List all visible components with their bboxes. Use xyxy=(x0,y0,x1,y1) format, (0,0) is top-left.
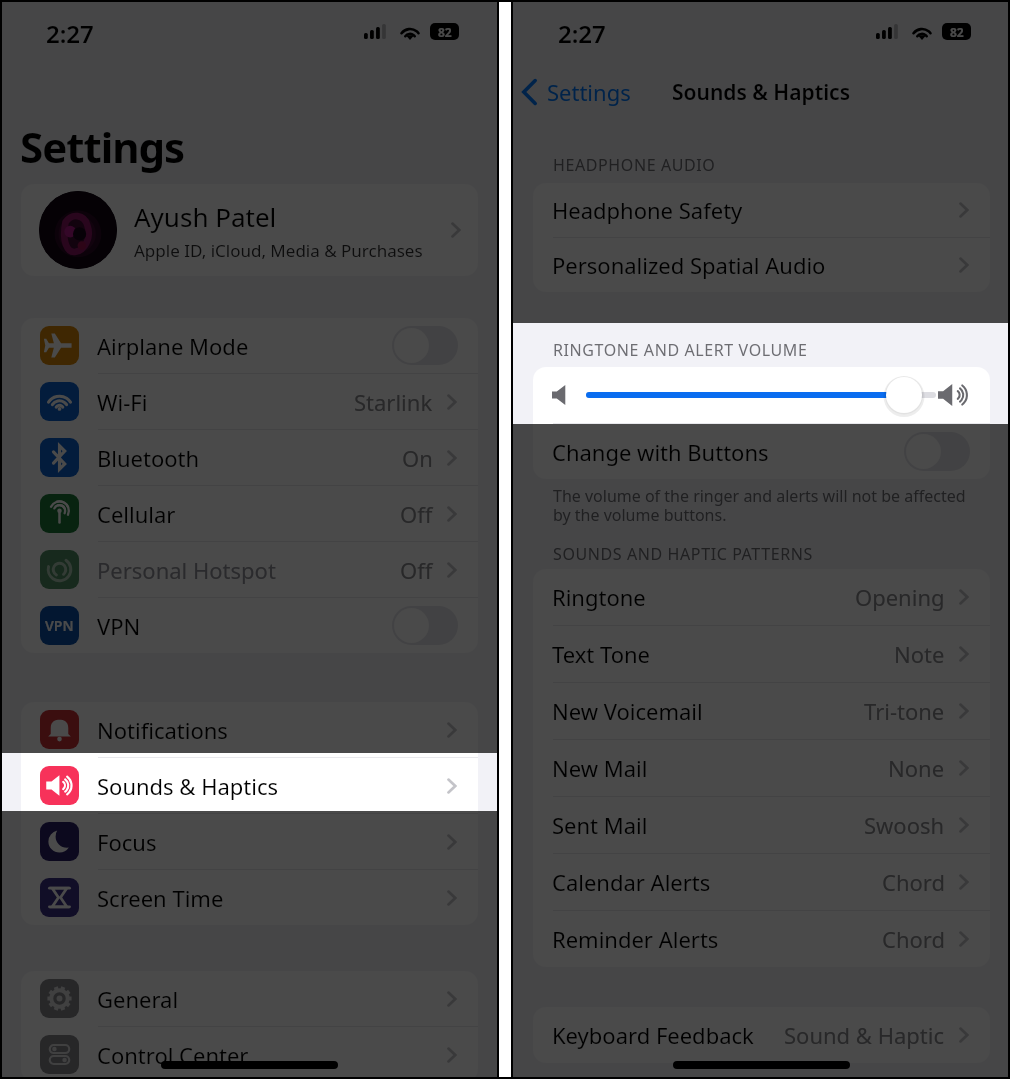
staticText: Keyboard Feedback xyxy=(552,1020,754,1050)
other: Open xyxy=(959,257,968,273)
staticText: Cellular xyxy=(97,499,176,529)
button[interactable]: Ringtone xyxy=(533,569,990,625)
other: Open xyxy=(959,589,968,605)
staticText: Screen Time xyxy=(97,883,224,913)
button[interactable]: VPN xyxy=(21,598,478,653)
staticText: Sent Mail xyxy=(552,810,648,840)
staticText: General xyxy=(97,984,179,1014)
staticText: 2:27 xyxy=(46,17,94,50)
staticText: Personalized Spatial Audio xyxy=(552,250,826,280)
staticText: Notifications xyxy=(97,715,228,745)
staticText: Opening xyxy=(855,582,945,612)
staticText: Swoosh xyxy=(864,810,945,840)
button[interactable]: Reminder Alerts xyxy=(533,911,990,967)
staticText: Bluetooth xyxy=(97,443,200,473)
staticText: RINGTONE AND ALERT VOLUME xyxy=(553,339,808,361)
other: Open xyxy=(447,506,456,522)
other: Open xyxy=(959,1027,968,1043)
staticText: Ringtone xyxy=(552,582,646,612)
staticText: 2:27 xyxy=(558,17,606,50)
staticText: New Voicemail xyxy=(552,696,703,726)
staticText: 82 xyxy=(438,24,452,40)
staticText: Reminder Alerts xyxy=(552,924,719,954)
other: Open xyxy=(451,222,460,238)
button[interactable]: General xyxy=(21,971,478,1026)
other: Open xyxy=(447,834,456,850)
button[interactable]: Sounds & Haptics xyxy=(21,758,478,813)
button[interactable]: Toggle xyxy=(392,606,458,645)
staticText: Change with Buttons xyxy=(552,437,769,467)
other: Open xyxy=(447,450,456,466)
staticText: Sounds & Haptics xyxy=(97,771,279,801)
staticText: Personal Hotspot xyxy=(97,555,276,585)
button[interactable]: Wi-Fi xyxy=(21,374,478,429)
staticText: Chord xyxy=(882,924,945,954)
button[interactable]: Keyboard Feedback xyxy=(533,1007,990,1063)
other: Open xyxy=(959,817,968,833)
other: Open xyxy=(959,760,968,776)
staticText: Apple ID, iCloud, Media & Purchases xyxy=(134,239,423,262)
staticText: New Mail xyxy=(552,753,648,783)
other: Open xyxy=(959,646,968,662)
button[interactable]: Bluetooth xyxy=(21,430,478,485)
staticText: Starlink xyxy=(354,387,433,417)
staticText: Note xyxy=(894,639,945,669)
button[interactable]: Headphone Safety xyxy=(533,183,990,237)
button[interactable]: Airplane Mode xyxy=(21,318,478,373)
staticText: Settings xyxy=(20,118,185,175)
other: Open xyxy=(959,931,968,947)
button[interactable]: Back to Settings xyxy=(522,76,631,108)
staticText: Text Tone xyxy=(552,639,650,669)
other: Open xyxy=(447,890,456,906)
staticText: Airplane Mode xyxy=(97,331,249,361)
staticText: SOUNDS AND HAPTIC PATTERNS xyxy=(553,543,813,565)
staticText: Tri-tone xyxy=(864,696,945,726)
staticText: Sounds & Haptics xyxy=(672,78,850,107)
button[interactable]: Calendar Alerts xyxy=(533,854,990,910)
staticText: Off xyxy=(400,555,433,585)
button[interactable]: New Voicemail xyxy=(533,683,990,739)
button[interactable]: Screen Time xyxy=(21,870,478,925)
button[interactable]: Personal Hotspot xyxy=(21,542,478,597)
other: Open xyxy=(447,722,456,738)
button[interactable]: Cellular xyxy=(21,486,478,541)
button[interactable]: Text Tone xyxy=(533,626,990,682)
staticText: VPN xyxy=(45,616,74,635)
button[interactable]: Personalized Spatial Audio xyxy=(533,238,990,292)
other: Open xyxy=(959,202,968,218)
button[interactable]: Focus xyxy=(21,814,478,869)
button[interactable]: Notifications xyxy=(21,702,478,757)
other: Open xyxy=(447,562,456,578)
other: Open xyxy=(447,1047,456,1063)
staticText: Wi-Fi xyxy=(97,387,148,417)
button[interactable]: Change with Buttons xyxy=(533,424,990,479)
staticText: On xyxy=(402,443,433,473)
staticText: VPN xyxy=(97,611,141,641)
button[interactable]: Toggle xyxy=(904,432,970,471)
staticText: Chord xyxy=(882,867,945,897)
staticText: Off xyxy=(400,499,433,529)
button[interactable]: Sent Mail xyxy=(533,797,990,853)
staticText: Sound & Haptic xyxy=(784,1020,945,1050)
staticText: Control Center xyxy=(97,1040,249,1070)
button[interactable]: New Mail xyxy=(533,740,990,796)
other: Open xyxy=(447,394,456,410)
staticText: 82 xyxy=(950,24,964,40)
staticText: Focus xyxy=(97,827,157,857)
button[interactable]: Toggle xyxy=(392,326,458,365)
other: Open xyxy=(447,778,456,794)
staticText: Headphone Safety xyxy=(552,195,743,225)
staticText: HEADPHONE AUDIO xyxy=(553,154,716,176)
other: Open xyxy=(447,991,456,1007)
other: Open xyxy=(959,874,968,890)
staticText: Calendar Alerts xyxy=(552,867,711,897)
staticText: The volume of the ringer and alerts will… xyxy=(553,485,966,526)
staticText: None xyxy=(888,753,945,783)
other: Open xyxy=(959,703,968,719)
staticText: Settings xyxy=(547,77,631,107)
button[interactable]: Ayush Patel xyxy=(21,184,478,276)
button[interactable]: Control Center xyxy=(21,1027,478,1079)
staticText: Ayush Patel xyxy=(134,199,277,234)
button[interactable]: Ringtone and alert volume xyxy=(533,367,990,423)
